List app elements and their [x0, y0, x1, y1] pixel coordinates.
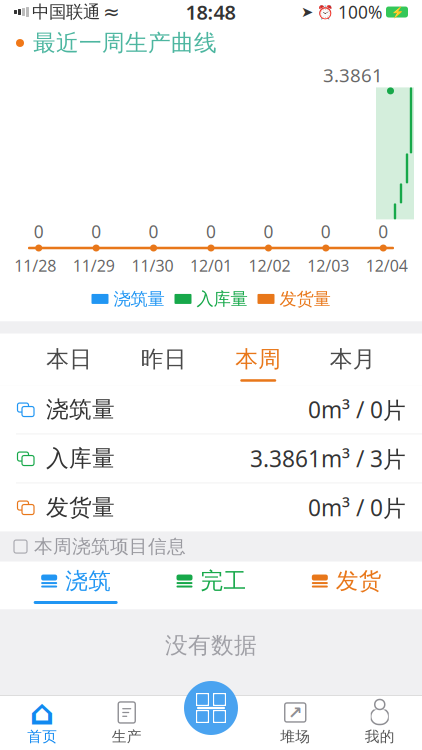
- staticText: 0: [34, 220, 44, 243]
- button[interactable]: 浇筑: [8, 562, 143, 610]
- button[interactable]: 本日: [22, 342, 116, 386]
- staticText: 本周浇筑项目信息: [34, 535, 186, 558]
- staticText: 11/28: [14, 255, 56, 276]
- staticText: 本月: [330, 345, 376, 373]
- button[interactable]: 昨日: [116, 342, 211, 386]
- staticText: 18:48: [185, 0, 235, 25]
- staticText: ⏰: [317, 4, 334, 20]
- staticText: 0: [206, 220, 216, 243]
- button[interactable]: 入库量: [0, 435, 422, 483]
- staticText: 3.3861m³ / 3片: [250, 443, 406, 474]
- staticText: 0m³ / 0片: [308, 492, 406, 523]
- staticText: 0: [321, 220, 331, 243]
- button[interactable]: ⌂: [0, 698, 84, 748]
- staticText: 堆场: [280, 727, 310, 745]
- staticText: 浇筑量: [46, 396, 115, 423]
- staticText: 0: [263, 220, 273, 243]
- staticText: 最近一周生产曲线: [33, 29, 217, 57]
- button[interactable]: ↗: [253, 698, 337, 748]
- staticText: 本周: [235, 345, 281, 373]
- staticText: ↗: [288, 703, 303, 722]
- staticText: 生产: [112, 727, 142, 745]
- staticText: 中国联通: [32, 1, 100, 23]
- staticText: ➤: [301, 4, 313, 20]
- staticText: 完工: [200, 567, 246, 595]
- staticText: 入库量: [196, 288, 247, 310]
- staticText: 0: [378, 220, 388, 243]
- staticText: ⚡: [390, 6, 403, 18]
- staticText: 11/30: [131, 255, 173, 276]
- staticText: 3.3861: [323, 63, 383, 87]
- staticText: 0: [91, 220, 101, 243]
- staticText: 首页: [27, 727, 57, 745]
- staticText: 100%: [338, 0, 382, 23]
- staticText: 12/04: [366, 255, 408, 276]
- staticText: 12/03: [307, 255, 349, 276]
- button[interactable]: 扫一扫: [184, 681, 238, 735]
- button[interactable]: 发货: [279, 562, 414, 610]
- staticText: 入库量: [46, 445, 115, 472]
- staticText: 0m³ / 0片: [308, 394, 406, 425]
- staticText: 12/02: [249, 255, 291, 276]
- staticText: 发货量: [46, 494, 115, 521]
- staticText: 没有数据: [165, 632, 257, 659]
- button[interactable]: 发货量: [0, 484, 422, 532]
- staticText: 0: [149, 220, 159, 243]
- staticText: 发货: [336, 567, 382, 595]
- button[interactable]: 浇筑量: [0, 386, 422, 434]
- button[interactable]: 生产: [84, 698, 169, 748]
- staticText: 本日: [46, 345, 92, 373]
- staticText: 昨日: [141, 345, 187, 373]
- staticText: 浇筑量: [113, 288, 164, 310]
- staticText: 浇筑: [65, 567, 111, 595]
- staticText: ⌂: [30, 693, 55, 732]
- staticText: 发货量: [279, 288, 330, 310]
- staticText: 12/01: [190, 255, 232, 276]
- staticText: 11/29: [73, 255, 115, 276]
- staticText: 我的: [365, 727, 395, 745]
- staticText: ≈: [103, 1, 120, 23]
- button[interactable]: 我的: [337, 698, 422, 748]
- button[interactable]: 本周: [211, 342, 305, 386]
- button[interactable]: 完工: [143, 562, 279, 610]
- button[interactable]: 本月: [305, 342, 400, 386]
